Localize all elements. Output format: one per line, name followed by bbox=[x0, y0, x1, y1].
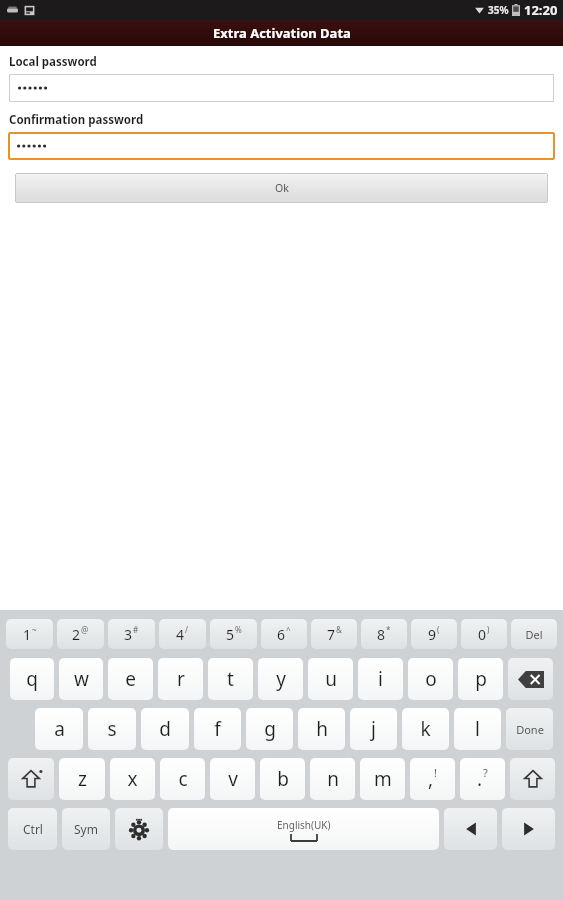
button[interactable]: n bbox=[310, 758, 355, 800]
staticText: Confirmation password bbox=[9, 112, 144, 128]
staticText: q bbox=[26, 666, 38, 692]
button[interactable]: Ctrl bbox=[8, 808, 57, 850]
button[interactable]: , bbox=[410, 758, 455, 800]
button[interactable]: 1 bbox=[6, 619, 53, 649]
staticText: 5 bbox=[226, 625, 235, 644]
button[interactable]: Move right bbox=[502, 808, 555, 850]
staticText: / bbox=[185, 624, 189, 635]
staticText: p bbox=[475, 666, 487, 692]
button[interactable]: c bbox=[160, 758, 205, 800]
button[interactable] bbox=[8, 132, 555, 160]
staticText: s bbox=[107, 716, 117, 742]
staticText: ! bbox=[434, 765, 437, 780]
button[interactable]: l bbox=[454, 708, 501, 750]
button[interactable]: Space bbox=[168, 808, 439, 850]
staticText: u bbox=[325, 666, 337, 692]
staticText: ? bbox=[483, 765, 488, 780]
staticText: a bbox=[54, 716, 65, 742]
button[interactable]: m bbox=[360, 758, 405, 800]
button[interactable]: d bbox=[141, 708, 189, 750]
staticText: f bbox=[214, 716, 221, 742]
button[interactable]: q bbox=[10, 658, 54, 700]
staticText: 9 bbox=[428, 625, 437, 644]
button[interactable]: x bbox=[110, 758, 155, 800]
button[interactable]: Keyboard settings bbox=[115, 808, 163, 850]
staticText: Done bbox=[516, 722, 544, 737]
staticText: . bbox=[477, 766, 483, 792]
button[interactable]: t bbox=[208, 658, 253, 700]
staticText: y bbox=[276, 666, 286, 692]
button[interactable]: h bbox=[298, 708, 345, 750]
staticText: g bbox=[264, 716, 276, 742]
button[interactable]: v bbox=[210, 758, 255, 800]
staticText: ( bbox=[437, 624, 440, 635]
button[interactable]: k bbox=[402, 708, 449, 750]
button[interactable]: w bbox=[59, 658, 103, 700]
staticText: 1 bbox=[23, 625, 32, 644]
button[interactable]: Shift bbox=[510, 758, 555, 800]
button[interactable]: j bbox=[350, 708, 397, 750]
button[interactable]: . bbox=[460, 758, 505, 800]
button[interactable]: Del bbox=[511, 619, 557, 649]
staticText: Ok bbox=[275, 181, 289, 195]
staticText: ) bbox=[487, 624, 490, 635]
button[interactable]: r bbox=[158, 658, 203, 700]
button[interactable]: o bbox=[408, 658, 453, 700]
staticText: e bbox=[125, 666, 136, 692]
button[interactable]: y bbox=[258, 658, 303, 700]
staticText: Local password bbox=[9, 54, 97, 70]
button[interactable]: z bbox=[59, 758, 105, 800]
staticText: ^ bbox=[286, 624, 291, 635]
staticText: v bbox=[228, 766, 238, 792]
staticText: n bbox=[327, 766, 339, 792]
staticText: Ctrl bbox=[23, 821, 43, 837]
staticText: 6 bbox=[277, 625, 286, 644]
button[interactable]: Ok bbox=[15, 173, 548, 203]
staticText: 4 bbox=[176, 625, 185, 644]
button[interactable]: Sym bbox=[62, 808, 110, 850]
staticText: 7 bbox=[327, 625, 336, 644]
button[interactable]: 0 bbox=[461, 619, 507, 649]
button[interactable]: 8 bbox=[361, 619, 407, 649]
button[interactable]: b bbox=[260, 758, 305, 800]
button[interactable]: 6 bbox=[261, 619, 307, 649]
button[interactable]: g bbox=[246, 708, 293, 750]
button[interactable]: 9 bbox=[411, 619, 457, 649]
button[interactable]: a bbox=[35, 708, 83, 750]
staticText: d bbox=[159, 716, 171, 742]
staticText: Extra Activation Data bbox=[213, 24, 351, 42]
button[interactable]: u bbox=[308, 658, 353, 700]
staticText: % bbox=[235, 624, 242, 635]
button[interactable]: Backspace bbox=[508, 658, 553, 700]
button[interactable]: 2 bbox=[57, 619, 104, 649]
button[interactable]: 7 bbox=[311, 619, 357, 649]
staticText: m bbox=[374, 766, 392, 792]
button[interactable]: Move left bbox=[444, 808, 497, 850]
button[interactable]: Done bbox=[506, 708, 553, 750]
button[interactable] bbox=[9, 74, 554, 102]
staticText: English(UK) bbox=[277, 818, 331, 832]
staticText: z bbox=[78, 766, 87, 792]
staticText: , bbox=[428, 766, 434, 792]
staticText: Del bbox=[525, 627, 543, 642]
button[interactable]: 5 bbox=[210, 619, 257, 649]
staticText: o bbox=[425, 666, 437, 692]
button[interactable]: s bbox=[88, 708, 136, 750]
staticText: t bbox=[227, 666, 234, 692]
staticText: w bbox=[74, 666, 89, 692]
button[interactable]: i bbox=[358, 658, 403, 700]
button[interactable]: 4 bbox=[159, 619, 206, 649]
staticText: 35% bbox=[488, 3, 509, 17]
staticText: # bbox=[133, 624, 139, 635]
staticText: i bbox=[378, 666, 383, 692]
button[interactable]: e bbox=[108, 658, 153, 700]
button[interactable]: p bbox=[458, 658, 503, 700]
staticText: x bbox=[127, 766, 138, 792]
staticText: r bbox=[177, 666, 185, 692]
staticText: 12:20 bbox=[524, 1, 558, 19]
staticText: & bbox=[336, 624, 342, 635]
button[interactable]: 3 bbox=[108, 619, 155, 649]
staticText: b bbox=[277, 766, 289, 792]
button[interactable]: Shift bbox=[8, 758, 54, 800]
button[interactable]: f bbox=[194, 708, 241, 750]
